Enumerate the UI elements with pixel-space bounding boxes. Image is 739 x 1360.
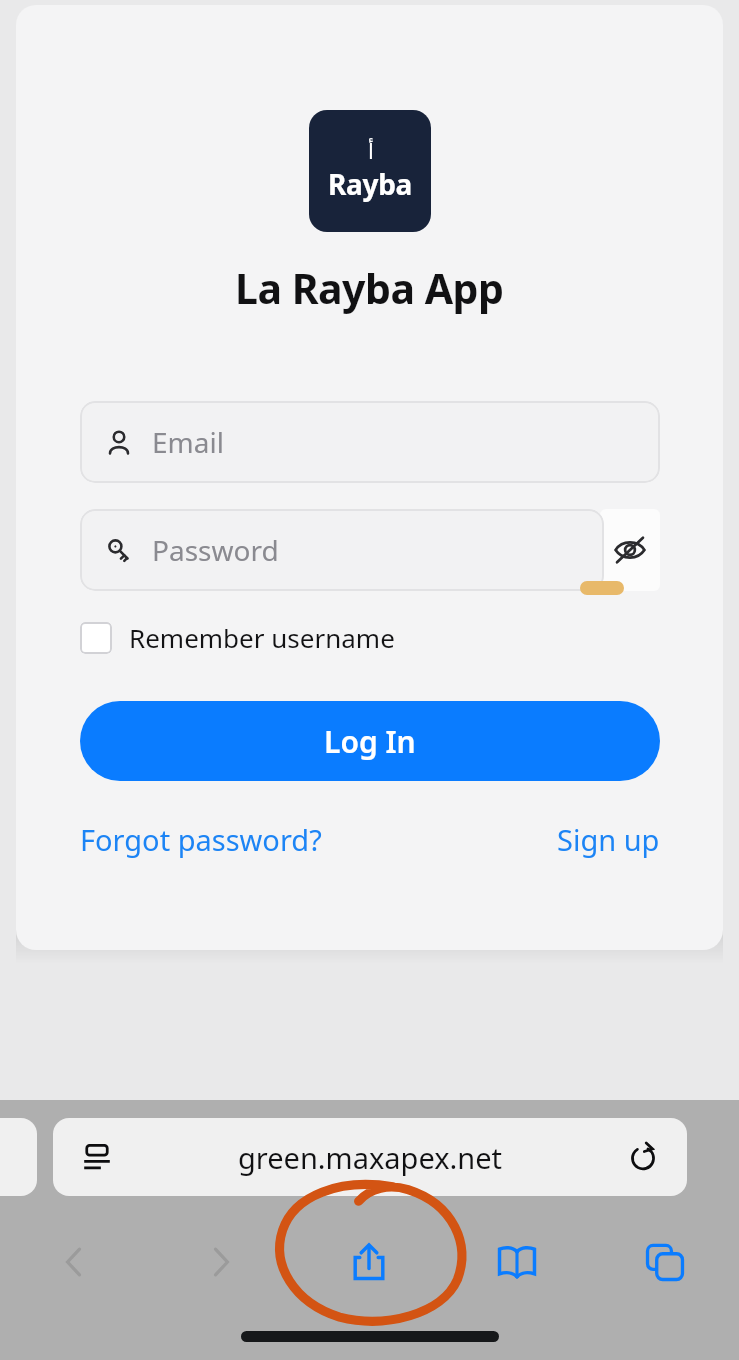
button[interactable]: Password <box>80 509 604 591</box>
staticText: Password <box>152 531 279 569</box>
button[interactable]: Forward <box>147 1222 295 1302</box>
button[interactable]: Forgot password? <box>80 816 322 863</box>
staticText: green.maxapex.net <box>115 1138 625 1177</box>
staticText: Remember username <box>129 620 395 655</box>
staticText: Rayba <box>328 165 413 203</box>
button[interactable]: Tabs <box>591 1222 739 1302</box>
button[interactable]: Email <box>80 401 660 483</box>
staticText: Sign up <box>557 820 660 859</box>
staticText: Log In <box>324 721 416 762</box>
button[interactable]: Sign up <box>557 816 660 863</box>
staticText: La Rayba App <box>235 260 504 316</box>
button[interactable]: Log In <box>80 701 660 781</box>
button[interactable]: Share <box>295 1222 443 1302</box>
staticText: أ <box>368 140 374 164</box>
staticText: Email <box>152 423 224 461</box>
button[interactable]: Bookmarks <box>443 1222 591 1302</box>
button[interactable]: Page settings <box>79 1139 115 1175</box>
button[interactable]: Remember username <box>80 616 660 659</box>
staticText: Forgot password? <box>80 820 322 859</box>
button[interactable]: Page settings <box>53 1118 687 1196</box>
button[interactable]: Reload <box>625 1139 661 1175</box>
button[interactable]: Hide password <box>600 520 660 580</box>
